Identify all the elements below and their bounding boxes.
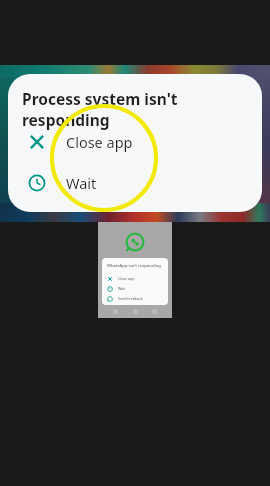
button[interactable]: Close app <box>107 274 165 283</box>
staticText: Send feedback <box>118 296 143 301</box>
staticText: Close app <box>66 132 133 152</box>
button[interactable]: Wait <box>107 284 165 293</box>
button[interactable]: Send feedback <box>107 294 165 303</box>
staticText: Process system isn't responding <box>22 88 248 130</box>
staticText: Wait <box>118 286 126 291</box>
button[interactable]: Wait <box>8 163 262 203</box>
staticText: Wait <box>66 173 97 193</box>
staticText: Close app <box>118 276 135 281</box>
button[interactable]: Close app <box>8 122 262 162</box>
staticText: WhatsApp isn't responding <box>107 263 161 269</box>
